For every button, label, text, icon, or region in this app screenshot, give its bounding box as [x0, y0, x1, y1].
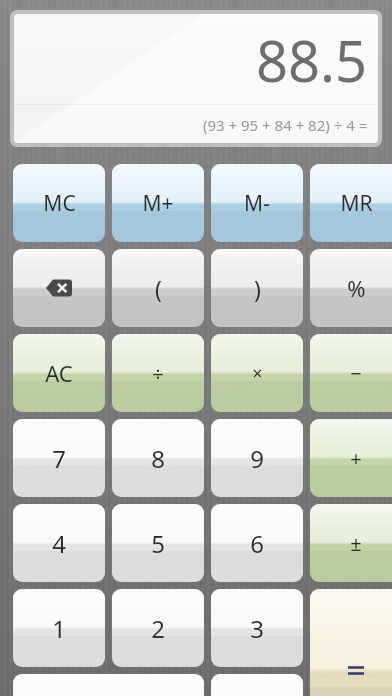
staticText: (	[155, 273, 162, 304]
staticText: )	[254, 273, 261, 304]
button[interactable]: 9	[211, 419, 303, 497]
staticText: M+	[142, 189, 174, 218]
staticText: 88.5	[256, 22, 368, 98]
staticText: 5	[151, 527, 165, 560]
button[interactable]: 7	[13, 419, 105, 497]
button[interactable]: MC	[13, 164, 105, 242]
button[interactable]: ±	[310, 504, 392, 582]
staticText: AC	[45, 358, 73, 388]
button[interactable]: 0	[13, 674, 204, 696]
staticText: 9	[250, 442, 264, 475]
staticText: ±	[350, 530, 362, 557]
staticText: 7	[52, 442, 66, 475]
staticText: M-	[244, 189, 270, 218]
button[interactable]: Backspace	[13, 249, 105, 327]
button[interactable]: M-	[211, 164, 303, 242]
button[interactable]: )	[211, 249, 303, 327]
staticText: 8	[151, 442, 165, 475]
button[interactable]: 2	[112, 589, 204, 667]
button[interactable]: %	[310, 249, 392, 327]
button[interactable]: MR	[310, 164, 392, 242]
button[interactable]: 8	[112, 419, 204, 497]
staticText: 1	[52, 612, 66, 645]
staticText: ÷	[152, 360, 164, 387]
button[interactable]: .	[211, 674, 303, 696]
button[interactable]: +	[310, 419, 392, 497]
button[interactable]: AC	[13, 334, 105, 412]
button[interactable]: (	[112, 249, 204, 327]
staticText: +	[350, 445, 362, 472]
staticText: MC	[43, 189, 76, 218]
button[interactable]: ÷	[112, 334, 204, 412]
button[interactable]: Equals	[310, 589, 392, 696]
staticText: −	[350, 360, 362, 387]
staticText: (93 + 95 + 84 + 82) ÷ 4 =	[203, 115, 368, 135]
button[interactable]: M+	[112, 164, 204, 242]
staticText: 6	[250, 527, 264, 560]
button[interactable]: 1	[13, 589, 105, 667]
button[interactable]: −	[310, 334, 392, 412]
button[interactable]: 4	[13, 504, 105, 582]
button[interactable]: 5	[112, 504, 204, 582]
button[interactable]: ×	[211, 334, 303, 412]
button[interactable]: 3	[211, 589, 303, 667]
staticText: 3	[250, 612, 264, 645]
staticText: 2	[151, 612, 165, 645]
staticText: MR	[340, 189, 373, 218]
staticText: 4	[52, 527, 66, 560]
staticText: ×	[252, 361, 263, 386]
button[interactable]: 6	[211, 504, 303, 582]
button[interactable]: 88.5	[14, 14, 378, 143]
staticText: %	[347, 273, 366, 303]
